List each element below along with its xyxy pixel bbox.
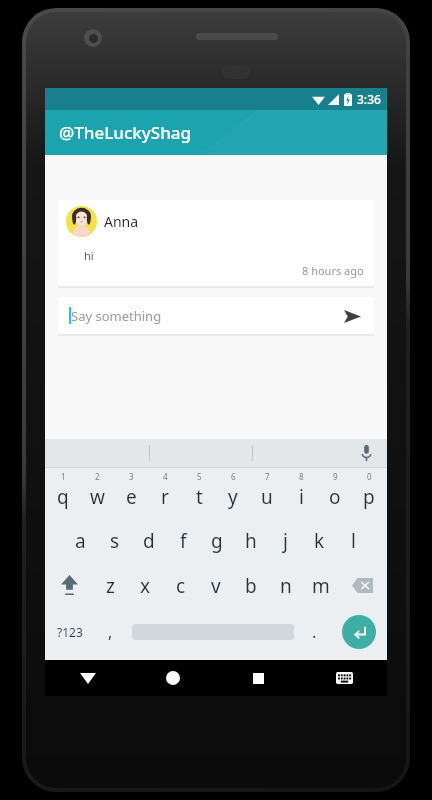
button[interactable]: m	[303, 563, 338, 608]
staticText: 5	[197, 471, 202, 482]
button[interactable]: 2	[80, 468, 114, 518]
staticText: 0	[367, 471, 372, 482]
staticText: ,	[108, 621, 113, 643]
staticText: hi	[84, 248, 94, 263]
staticText: s	[110, 528, 120, 554]
button[interactable]: Voice input	[356, 443, 376, 463]
staticText: ?123	[57, 624, 83, 640]
button[interactable]: x	[128, 563, 163, 608]
button[interactable]: Delete	[338, 563, 387, 608]
staticText: 4	[163, 471, 168, 482]
button[interactable]: .	[298, 608, 331, 656]
button[interactable]: Home	[130, 660, 215, 696]
staticText: 6	[231, 471, 236, 482]
button[interactable]: f	[166, 518, 200, 563]
button[interactable]: 0	[352, 468, 386, 518]
button[interactable]: k	[302, 518, 336, 563]
staticText: i	[299, 484, 304, 510]
button[interactable]: @TheLuckyShag	[45, 110, 387, 155]
button[interactable]: 9	[318, 468, 352, 518]
staticText: 7	[265, 471, 270, 482]
button[interactable]: Anna	[58, 200, 374, 286]
staticText: o	[329, 484, 341, 510]
staticText: g	[211, 528, 223, 554]
button[interactable]: 1	[46, 468, 80, 518]
button[interactable]: 6	[216, 468, 250, 518]
button[interactable]: Space	[127, 608, 298, 656]
staticText: d	[143, 528, 155, 554]
button[interactable]: Recents	[215, 660, 301, 696]
staticText: k	[314, 528, 325, 554]
staticText: b	[245, 573, 257, 599]
staticText: 9	[333, 471, 338, 482]
button[interactable]: ?123	[45, 608, 94, 656]
staticText: .	[312, 621, 317, 643]
staticText: w	[90, 484, 105, 510]
button[interactable]: Hide keyboard	[45, 660, 130, 696]
staticText: 2	[95, 471, 100, 482]
staticText: c	[176, 573, 186, 599]
button[interactable]: Say something	[58, 297, 374, 334]
button[interactable]: Shift	[45, 563, 93, 608]
button[interactable]: Enter	[342, 615, 376, 649]
button[interactable]: n	[268, 563, 303, 608]
button[interactable]: h	[234, 518, 268, 563]
staticText: 8 hours ago	[302, 263, 364, 278]
staticText: v	[211, 573, 221, 599]
staticText: p	[363, 484, 375, 510]
staticText: j	[283, 528, 288, 554]
button[interactable]: 7	[250, 468, 284, 518]
staticText: f	[180, 528, 187, 554]
button[interactable]: Send	[341, 305, 363, 327]
staticText: e	[126, 484, 137, 510]
staticText: u	[261, 484, 273, 510]
staticText: 1	[61, 471, 66, 482]
staticText: z	[106, 573, 115, 599]
staticText: Anna	[104, 212, 139, 231]
staticText: y	[228, 484, 238, 510]
button[interactable]: j	[268, 518, 302, 563]
button[interactable]: c	[163, 563, 198, 608]
button[interactable]: l	[336, 518, 370, 563]
button[interactable]: 4	[148, 468, 182, 518]
staticText: Say something	[71, 307, 162, 325]
button[interactable]: g	[200, 518, 234, 563]
staticText: q	[57, 484, 69, 510]
button[interactable]: a	[63, 518, 98, 563]
button[interactable]: 3	[114, 468, 148, 518]
button[interactable]: v	[198, 563, 233, 608]
staticText: x	[140, 573, 151, 599]
button[interactable]: z	[93, 563, 128, 608]
staticText: @TheLuckyShag	[59, 121, 192, 144]
staticText: r	[161, 484, 169, 510]
button[interactable]: 5	[182, 468, 216, 518]
staticText: 3	[129, 471, 134, 482]
staticText: n	[280, 573, 292, 599]
staticText: a	[75, 528, 86, 554]
button[interactable]: Switch keyboard	[301, 660, 387, 696]
staticText: t	[196, 484, 203, 510]
button[interactable]: b	[233, 563, 268, 608]
staticText: m	[312, 573, 330, 599]
staticText: h	[245, 528, 257, 554]
button[interactable]: 8	[284, 468, 318, 518]
button[interactable]: s	[98, 518, 132, 563]
staticText: l	[351, 528, 356, 554]
staticText: 3:36	[357, 91, 381, 107]
button[interactable]: d	[132, 518, 166, 563]
staticText: 8	[299, 471, 304, 482]
button[interactable]: ,	[94, 608, 127, 656]
